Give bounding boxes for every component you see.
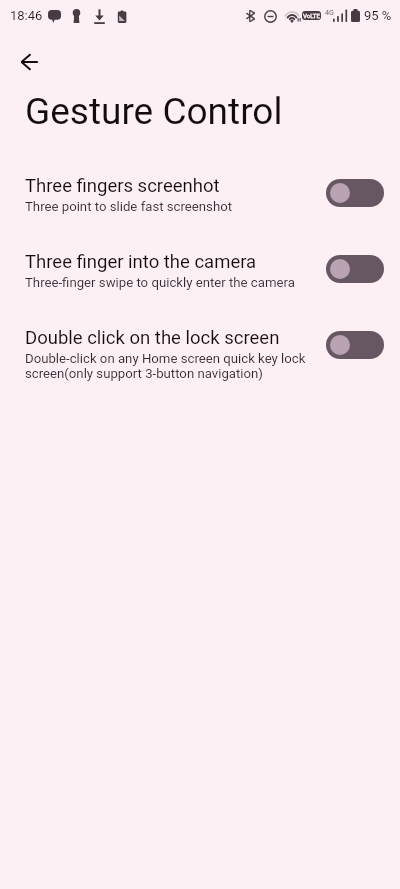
staticText: Three finger into the camera — [25, 251, 257, 273]
button[interactable]: Toggle — [326, 179, 384, 207]
button[interactable]: Double click on the lock screen — [0, 316, 400, 374]
button[interactable]: Back — [5, 38, 53, 86]
button[interactable]: Three finger into the camera — [0, 240, 400, 298]
staticText: Three fingers screenhot — [25, 175, 220, 197]
staticText: Double-click on any Home screen quick ke… — [25, 351, 317, 381]
staticText: Gesture Control — [25, 90, 283, 133]
staticText: Double click on the lock screen — [25, 327, 280, 349]
button[interactable]: Toggle — [326, 255, 384, 283]
staticText: Three-finger swipe to quickly enter the … — [25, 275, 295, 290]
staticText: 4G — [325, 8, 334, 16]
staticText: VoLTE — [303, 12, 321, 19]
button[interactable]: Toggle — [326, 331, 384, 359]
staticText: 95 % — [364, 8, 392, 23]
staticText: 18:46 — [10, 8, 43, 23]
button[interactable]: Three fingers screenhot — [0, 164, 400, 222]
staticText: Three point to slide fast screenshot — [25, 199, 233, 214]
